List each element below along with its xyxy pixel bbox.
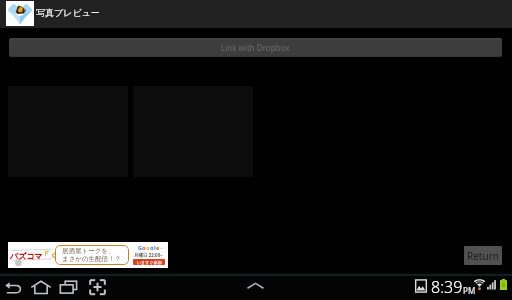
staticText: 居酒屋トークを、 xyxy=(62,247,115,255)
staticText: まさかの生配信！？ xyxy=(62,255,122,263)
staticText: o xyxy=(146,244,150,250)
button[interactable]: Screenshot captured xyxy=(414,278,428,294)
button[interactable]: Hide keyboard xyxy=(246,282,265,290)
button[interactable]: いますぐ参加 xyxy=(133,259,165,265)
staticText: 写真プレビュー xyxy=(36,7,100,18)
staticText: Return xyxy=(467,249,499,263)
button[interactable]: Back xyxy=(3,278,25,296)
button[interactable]: パズコマ xyxy=(8,242,168,268)
staticText: PM xyxy=(463,285,476,296)
staticText: e xyxy=(156,244,160,250)
button[interactable]: Screenshot xyxy=(87,278,108,296)
staticText: l xyxy=(154,244,156,250)
staticText: G xyxy=(138,244,142,250)
staticText: パズコマ xyxy=(10,251,43,261)
staticText: g xyxy=(150,244,154,250)
button[interactable]: Home xyxy=(30,278,52,296)
staticText: Link with Dropbox xyxy=(221,42,290,53)
staticText: ド xyxy=(43,249,50,257)
staticText: 8:39 xyxy=(431,276,463,298)
button[interactable]: Link with Dropbox xyxy=(9,38,502,57)
staticText: o xyxy=(142,244,146,250)
staticText: いますぐ参加 xyxy=(137,260,162,265)
staticText: 月曜日 22:00~ xyxy=(134,252,163,258)
button[interactable]: Recent apps xyxy=(59,278,81,296)
button[interactable]: Return xyxy=(464,246,502,265)
